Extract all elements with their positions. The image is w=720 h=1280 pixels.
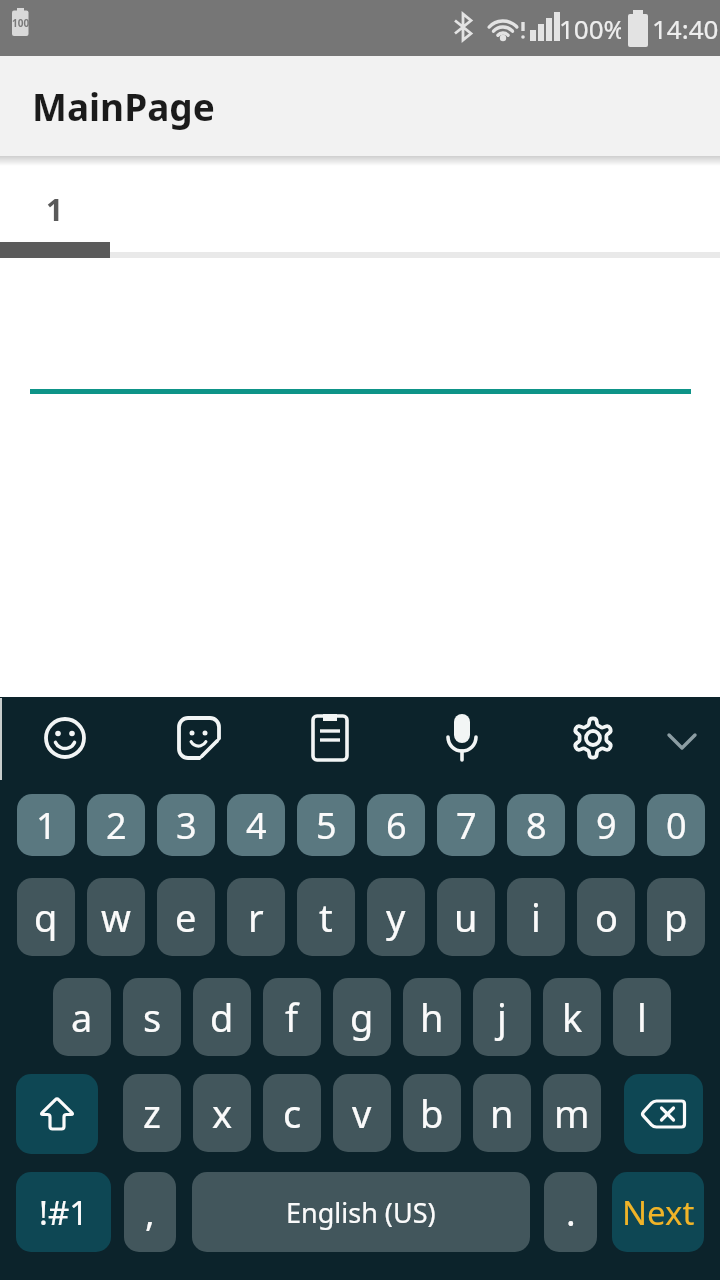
staticText: , xyxy=(145,1188,155,1237)
button[interactable]: r xyxy=(227,878,285,956)
button[interactable]: !#1 xyxy=(16,1172,111,1252)
staticText: 100% xyxy=(559,11,621,46)
staticText: s xyxy=(143,991,162,1043)
staticText: l xyxy=(637,991,647,1043)
staticText: 100 xyxy=(12,16,29,30)
staticText: q xyxy=(34,891,58,943)
staticText: b xyxy=(420,1087,444,1139)
button[interactable]: Next xyxy=(612,1172,704,1252)
staticText: z xyxy=(143,1087,161,1139)
staticText: i xyxy=(531,891,541,943)
button[interactable] xyxy=(27,702,103,778)
staticText: u xyxy=(454,891,478,943)
button[interactable]: 7 xyxy=(437,794,495,856)
button[interactable]: e xyxy=(157,878,215,956)
button[interactable]: 4 xyxy=(227,794,285,856)
button[interactable]: 6 xyxy=(367,794,425,856)
button[interactable]: 1 xyxy=(17,794,75,856)
button[interactable]: s xyxy=(123,978,181,1056)
staticText: English (US) xyxy=(286,1194,436,1231)
button[interactable]: v xyxy=(333,1074,391,1152)
button[interactable]: h xyxy=(403,978,461,1056)
button[interactable]: 8 xyxy=(507,794,565,856)
staticText: 9 xyxy=(596,801,617,850)
button[interactable]: o xyxy=(577,878,635,956)
staticText: w xyxy=(101,891,131,943)
staticText: 4 xyxy=(246,801,267,850)
button[interactable]: m xyxy=(543,1074,601,1152)
staticText: j xyxy=(497,991,507,1043)
button[interactable]: l xyxy=(613,978,671,1056)
button[interactable]: 2 xyxy=(87,794,145,856)
button[interactable] xyxy=(555,702,631,778)
button[interactable]: , xyxy=(124,1172,176,1252)
staticText: f xyxy=(285,991,299,1043)
staticText: r xyxy=(248,891,264,943)
staticText: n xyxy=(490,1087,514,1139)
staticText: o xyxy=(595,891,618,943)
staticText: a xyxy=(71,991,93,1043)
button[interactable]: f xyxy=(263,978,321,1056)
button[interactable]: d xyxy=(193,978,251,1056)
button[interactable]: 3 xyxy=(157,794,215,856)
staticText: c xyxy=(283,1087,302,1139)
staticText: k xyxy=(562,991,583,1043)
staticText: 8 xyxy=(526,801,547,850)
button[interactable]: b xyxy=(403,1074,461,1152)
button[interactable]: x xyxy=(193,1074,251,1152)
button[interactable]: y xyxy=(367,878,425,956)
staticText: m xyxy=(554,1087,590,1139)
staticText: 2 xyxy=(106,801,127,850)
staticText: . xyxy=(566,1188,576,1237)
staticText: t xyxy=(319,891,333,943)
button[interactable] xyxy=(292,702,368,778)
staticText: e xyxy=(175,891,197,943)
button[interactable]: 5 xyxy=(297,794,355,856)
staticText: y xyxy=(386,891,406,943)
button[interactable]: n xyxy=(473,1074,531,1152)
staticText: 7 xyxy=(456,801,477,850)
staticText: h xyxy=(420,991,444,1043)
staticText: 14:40 xyxy=(652,11,718,46)
staticText: 5 xyxy=(316,801,337,850)
button[interactable]: w xyxy=(87,878,145,956)
button[interactable] xyxy=(159,702,235,778)
staticText: 3 xyxy=(176,801,197,850)
button[interactable]: j xyxy=(473,978,531,1056)
button[interactable]: a xyxy=(53,978,111,1056)
staticText: x xyxy=(212,1087,233,1139)
button[interactable]: 1 xyxy=(0,156,110,258)
button[interactable]: 9 xyxy=(577,794,635,856)
staticText: v xyxy=(352,1087,372,1139)
button[interactable] xyxy=(424,702,500,778)
button[interactable]: p xyxy=(647,878,705,956)
button[interactable]: 0 xyxy=(647,794,705,856)
button[interactable]: t xyxy=(297,878,355,956)
button[interactable] xyxy=(638,702,714,778)
button[interactable]: u xyxy=(437,878,495,956)
button[interactable] xyxy=(624,1074,703,1154)
button[interactable] xyxy=(16,1074,98,1154)
button[interactable]: z xyxy=(123,1074,181,1152)
staticText: 6 xyxy=(386,801,407,850)
button[interactable]: i xyxy=(507,878,565,956)
staticText: 1 xyxy=(46,189,64,230)
staticText: p xyxy=(664,891,688,943)
staticText: !#1 xyxy=(39,1190,89,1235)
staticText: MainPage xyxy=(32,81,215,131)
staticText: 1 xyxy=(36,801,57,850)
button[interactable]: English (US) xyxy=(192,1172,530,1252)
staticText: g xyxy=(350,991,374,1043)
staticText: 0 xyxy=(666,801,687,850)
button[interactable]: q xyxy=(17,878,75,956)
button[interactable]: g xyxy=(333,978,391,1056)
button[interactable]: k xyxy=(543,978,601,1056)
button[interactable]: . xyxy=(544,1172,597,1252)
staticText: Next xyxy=(622,1190,695,1235)
button[interactable]: c xyxy=(263,1074,321,1152)
staticText: d xyxy=(210,991,234,1043)
